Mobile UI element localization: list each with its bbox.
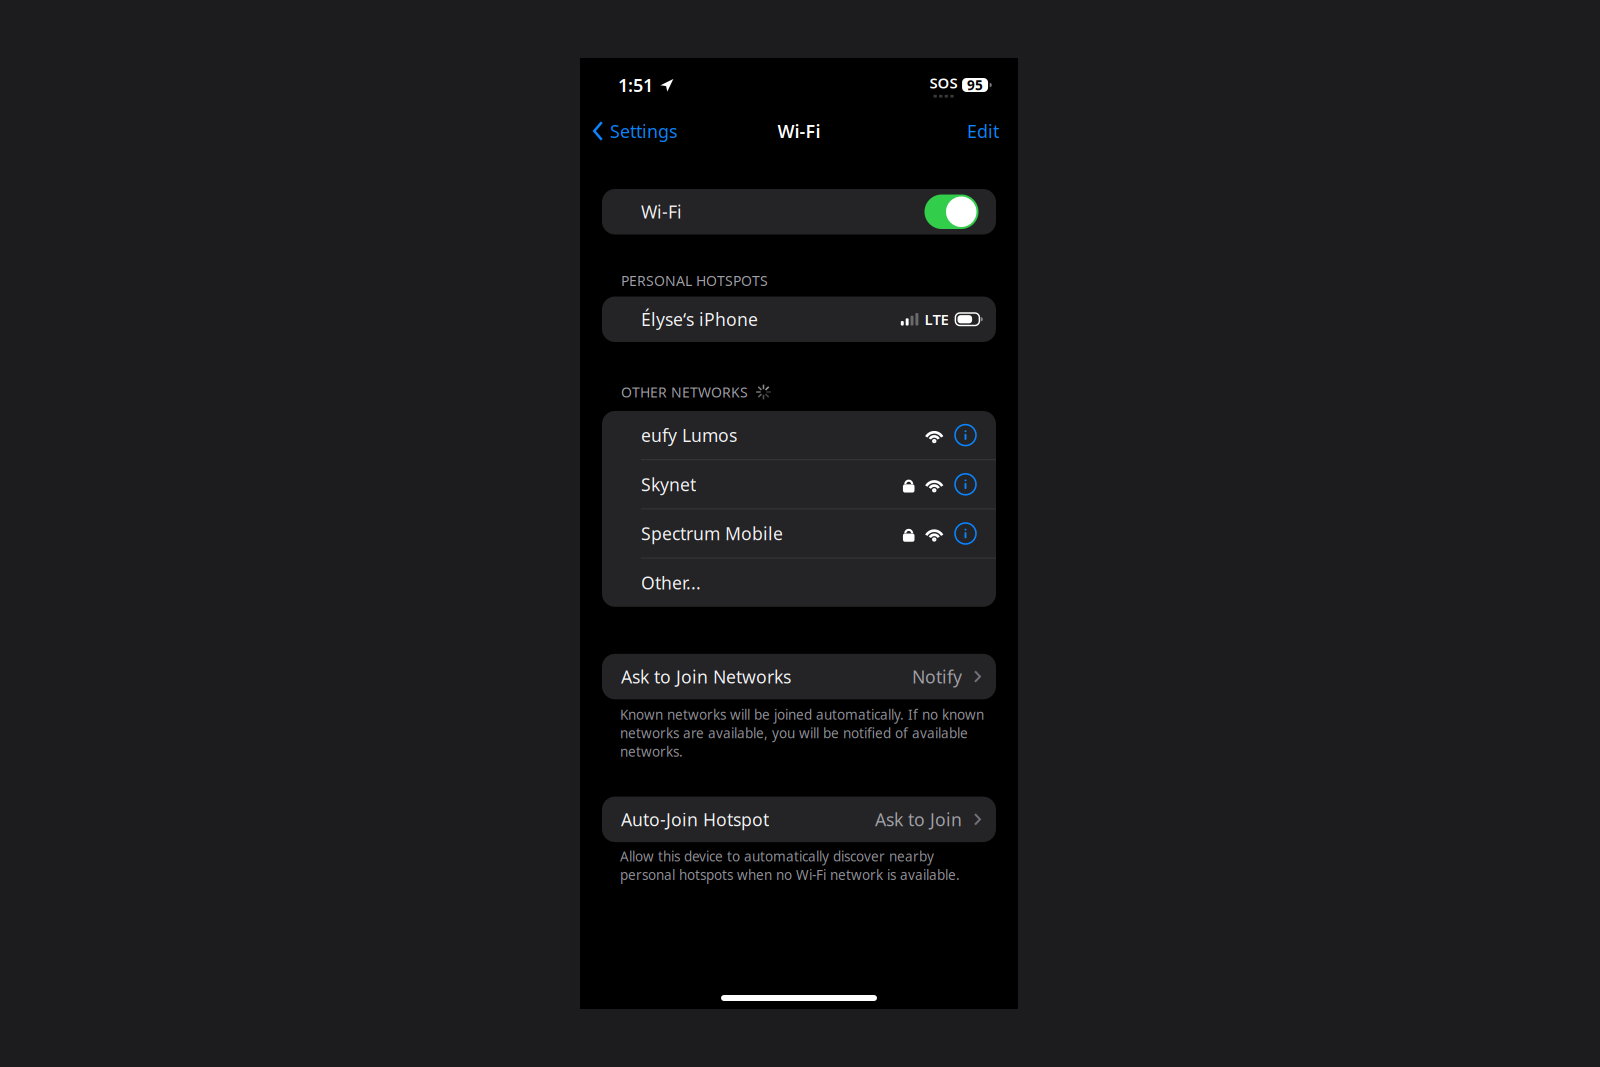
- button[interactable]: eufy Lumos: [602, 411, 996, 459]
- staticText: Skynet: [641, 472, 696, 496]
- button[interactable]: Wi-Fi: [602, 189, 996, 234]
- button[interactable]: Other...: [602, 559, 996, 607]
- staticText: Edit: [967, 119, 999, 143]
- staticText: Spectrum Mobile: [641, 521, 783, 545]
- staticText: Other...: [641, 571, 701, 595]
- button[interactable]: Settings: [580, 114, 688, 148]
- staticText: LTE: [924, 309, 948, 329]
- staticText: Settings: [610, 119, 678, 143]
- staticText: PERSONAL HOTSPOTS: [621, 271, 768, 290]
- staticText: Wi-Fi: [777, 119, 820, 143]
- button[interactable]: Edit: [955, 114, 1018, 148]
- staticText: Auto-Join Hotspot: [621, 807, 769, 831]
- button[interactable]: Élyse‘s iPhone: [602, 296, 996, 342]
- button[interactable]: Spectrum Mobile: [602, 509, 996, 558]
- staticText: Notify: [912, 665, 962, 689]
- staticText: 1:51: [618, 73, 653, 97]
- button[interactable]: Ask to Join Networks: [602, 654, 996, 699]
- staticText: Known networks will be joined automatica…: [620, 705, 984, 761]
- staticText: Allow this device to automatically disco…: [620, 847, 960, 884]
- staticText: 95: [967, 76, 983, 94]
- staticText: eufy Lumos: [641, 423, 737, 447]
- button[interactable]: Auto-Join Hotspot: [602, 797, 996, 842]
- staticText: Wi-Fi: [641, 200, 682, 224]
- staticText: SOS: [930, 72, 958, 93]
- staticText: Ask to Join Networks: [621, 665, 791, 689]
- staticText: Élyse‘s iPhone: [641, 307, 758, 331]
- staticText: OTHER NETWORKS: [621, 382, 748, 402]
- button[interactable]: Skynet: [602, 460, 996, 508]
- staticText: Ask to Join: [875, 807, 962, 831]
